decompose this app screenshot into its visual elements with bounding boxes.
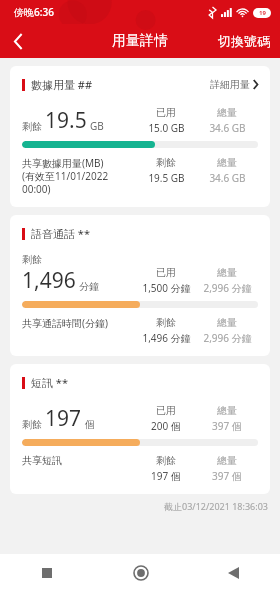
staticText: 已用 <box>156 266 176 279</box>
staticText: 197 <box>45 404 82 433</box>
staticText: 個 <box>85 418 95 431</box>
staticText: 34.6 GB <box>209 121 246 135</box>
staticText: 剩餘 <box>156 156 176 169</box>
staticText: 剩餘 <box>156 454 176 467</box>
staticText: 397 個 <box>212 469 242 483</box>
staticText: 語音通話 ** <box>31 226 90 241</box>
staticText: 2,996 分鐘 <box>203 281 252 295</box>
staticText: 共享短訊 <box>22 454 62 467</box>
staticText: 總量 <box>217 266 237 279</box>
button[interactable]: 短訊 ** <box>10 364 270 494</box>
staticText: 已用 <box>156 106 176 119</box>
staticText: 切換號碼 <box>218 33 270 49</box>
staticText: 共享數據用量(MB) (有效至11/01/2022 00:00) <box>22 156 109 196</box>
staticText: 詳細用量 <box>210 78 250 91</box>
staticText: 34.6 GB <box>209 171 246 185</box>
staticText: 短訊 ** <box>31 375 68 390</box>
button[interactable]: Home <box>94 554 187 592</box>
button[interactable]: Recents <box>0 554 94 592</box>
staticText: 總量 <box>217 316 237 329</box>
staticText: 總量 <box>217 454 237 467</box>
staticText: 剩餘 <box>22 253 42 266</box>
staticText: 197 個 <box>151 469 181 483</box>
staticText: 剩餘 <box>22 418 42 431</box>
staticText: 200 個 <box>151 419 181 433</box>
staticText: 19.5 <box>45 106 87 135</box>
button[interactable]: 切換號碼 <box>208 24 280 58</box>
staticText: 1,500 分鐘 <box>142 281 191 295</box>
staticText: 總量 <box>217 106 237 119</box>
staticText: 1,496 分鐘 <box>142 331 191 345</box>
staticText: 用量詳情 <box>112 32 168 50</box>
button[interactable]: Back <box>187 554 280 592</box>
staticText: 剩餘 <box>156 316 176 329</box>
button[interactable]: Back <box>0 24 36 58</box>
staticText: 19.5 GB <box>148 171 185 185</box>
staticText: 共享通話時間(分鐘) <box>22 316 108 330</box>
button[interactable]: 語音通話 ** <box>10 215 270 356</box>
staticText: 數據用量 ## <box>31 77 93 92</box>
staticText: 15.0 GB <box>148 121 185 135</box>
staticText: 傍晚6:36 <box>14 5 54 19</box>
staticText: 已用 <box>156 404 176 417</box>
staticText: 19 <box>259 9 266 17</box>
staticText: 總量 <box>217 404 237 417</box>
staticText: 總量 <box>217 156 237 169</box>
staticText: GB <box>90 119 104 133</box>
staticText: 截止03/12/2021 18:36:03 <box>164 500 268 512</box>
staticText: 1,496 <box>22 266 76 295</box>
staticText: 剩餘 <box>22 120 42 133</box>
button[interactable]: 數據用量 ## <box>10 66 270 207</box>
staticText: 397 個 <box>212 419 242 433</box>
staticText: 2,996 分鐘 <box>203 331 252 345</box>
button[interactable]: 詳細用量 <box>210 78 258 91</box>
staticText: 分鐘 <box>79 280 99 293</box>
